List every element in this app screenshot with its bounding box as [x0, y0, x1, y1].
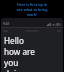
staticText: how are: [4, 46, 35, 57]
staticText: Hello: [4, 35, 24, 46]
staticText: work!: [2, 12, 62, 17]
staticText: you: [4, 57, 19, 68]
button[interactable]: Here is first tip in: [0, 0, 64, 18]
staticText: use what to bring: [2, 7, 62, 12]
staticText: Here is first tip in: [2, 2, 62, 7]
button[interactable]: Hello: [4, 35, 61, 72]
staticText: 9:41: [3, 22, 10, 26]
staticText: doing: [4, 68, 27, 72]
